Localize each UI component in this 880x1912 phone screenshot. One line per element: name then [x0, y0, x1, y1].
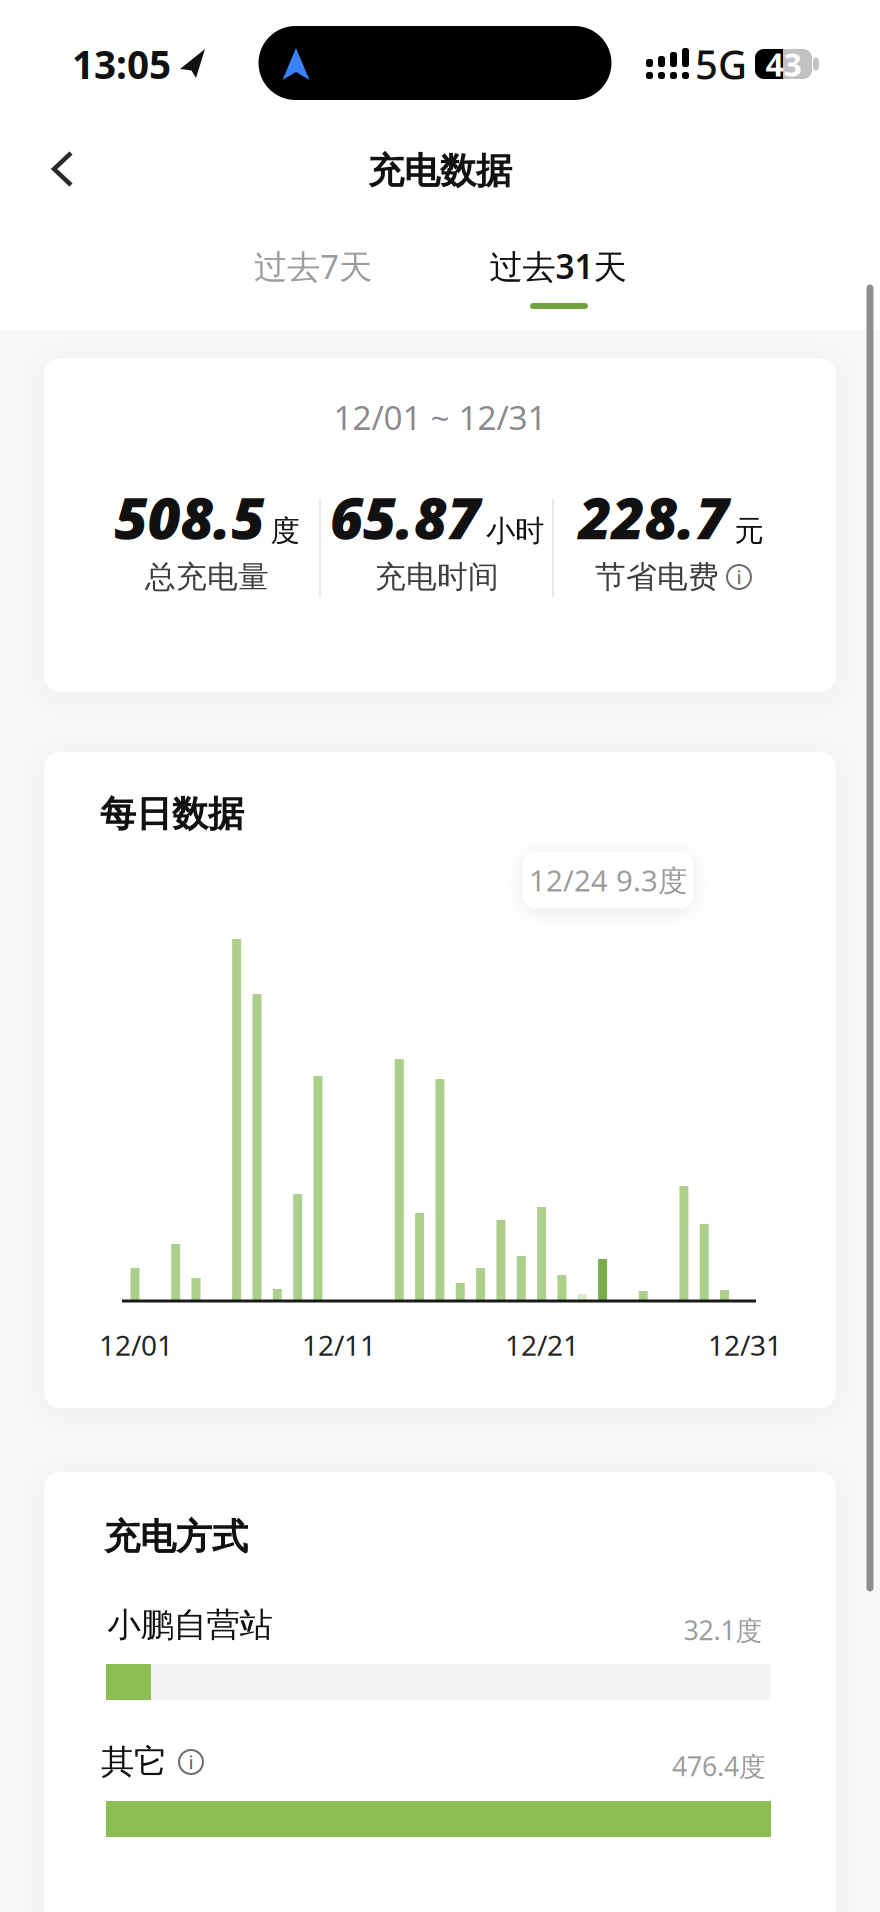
staticText: 元: [734, 513, 763, 549]
staticText: 小时: [486, 513, 544, 549]
staticText: 228.7: [578, 479, 728, 555]
staticText: 12/01 ~ 12/31: [333, 395, 546, 439]
staticText: 13:05: [72, 38, 171, 90]
staticText: 12/01: [99, 1326, 173, 1364]
button[interactable]: i: [727, 565, 751, 589]
staticText: 476.4度: [672, 1748, 766, 1784]
button[interactable]: [35, 141, 91, 197]
staticText: 节省电费: [595, 558, 719, 596]
staticText: 每日数据: [100, 792, 244, 836]
staticText: i: [736, 565, 741, 589]
staticText: 32.1度: [683, 1612, 762, 1648]
staticText: 过去7天: [254, 244, 372, 288]
staticText: 65.87: [330, 479, 480, 555]
staticText: 度: [270, 513, 299, 549]
staticText: 充电数据: [368, 149, 512, 193]
staticText: 508.5: [114, 479, 264, 555]
staticText: 12/24 9.3度: [529, 860, 687, 899]
staticText: 充电时间: [375, 558, 499, 596]
staticText: 12/11: [302, 1326, 376, 1364]
staticText: 5G: [695, 37, 747, 90]
staticText: 12/31: [708, 1326, 782, 1364]
staticText: 小鹏自营站: [107, 1604, 272, 1645]
staticText: 其它: [101, 1741, 167, 1782]
button[interactable]: 过去7天: [213, 236, 413, 296]
staticText: 43: [765, 43, 801, 85]
staticText: 总充电量: [145, 558, 269, 596]
button[interactable]: i: [179, 1750, 203, 1774]
staticText: 充电方式: [104, 1515, 248, 1559]
button[interactable]: 过去31天: [448, 246, 668, 312]
staticText: 12/21: [505, 1326, 579, 1364]
staticText: 过去31天: [489, 244, 626, 288]
staticText: i: [188, 1750, 193, 1774]
